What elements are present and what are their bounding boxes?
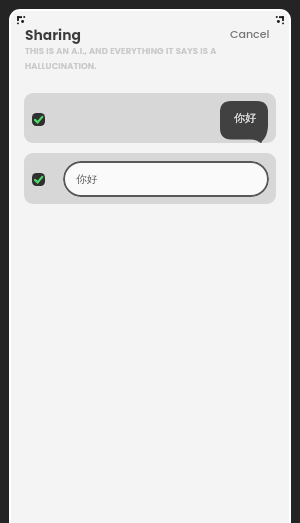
button[interactable]: 你好 xyxy=(63,161,269,197)
staticText: Cancel xyxy=(230,26,270,41)
staticText: 你好 xyxy=(234,111,257,125)
button[interactable]: Scan xyxy=(17,16,26,25)
button[interactable]: Cancel xyxy=(221,21,279,46)
button[interactable]: Selected xyxy=(32,113,45,126)
staticText: THIS IS AN A.I., AND EVERYTHING IT SAYS … xyxy=(25,45,224,72)
button[interactable]: Selected xyxy=(24,153,276,204)
button[interactable]: Expand xyxy=(275,16,284,25)
button[interactable]: Selected xyxy=(32,173,45,186)
staticText: 你好 xyxy=(76,173,98,186)
button[interactable]: 你好 xyxy=(220,101,268,143)
staticText: Sharing xyxy=(25,26,81,45)
button[interactable]: Selected xyxy=(24,93,276,143)
